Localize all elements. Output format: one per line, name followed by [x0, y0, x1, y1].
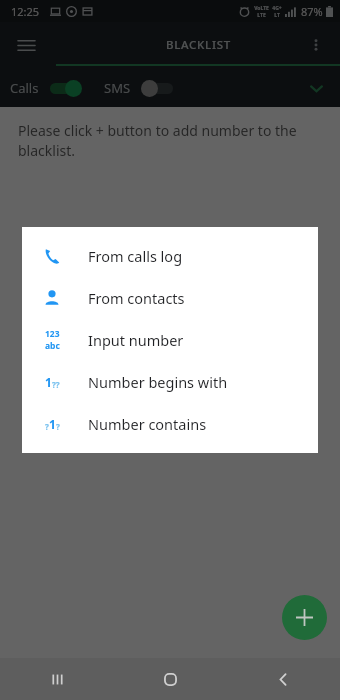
button[interactable]: More options: [298, 27, 334, 63]
button[interactable]: 123: [22, 319, 318, 361]
button[interactable]: Add number: [282, 595, 327, 640]
staticText: 4G+: [272, 5, 282, 12]
staticText: 1: [45, 374, 52, 390]
staticText: Please click + button to add number to t…: [18, 121, 310, 160]
staticText: ?: [56, 421, 60, 432]
button[interactable]: Back: [227, 658, 340, 700]
staticText: Input number: [88, 330, 184, 350]
staticText: 87%: [301, 4, 323, 19]
button[interactable]: ?: [22, 403, 318, 445]
staticText: 123: [45, 328, 60, 340]
button[interactable]: SMS: [104, 79, 174, 97]
staticText: From calls log: [88, 246, 183, 266]
staticText: abc: [45, 340, 60, 352]
staticText: 1: [49, 416, 56, 432]
button[interactable]: BLACKLIST: [56, 22, 340, 68]
button[interactable]: Recents: [0, 658, 114, 700]
staticText: SMS: [104, 79, 131, 97]
button[interactable]: 1: [22, 361, 318, 403]
button[interactable]: From calls log: [22, 235, 318, 277]
staticText: ??: [52, 379, 60, 390]
staticText: ?: [45, 421, 49, 432]
staticText: LT: [274, 12, 280, 19]
staticText: Calls: [10, 79, 39, 97]
staticText: 12:25: [11, 4, 40, 19]
staticText: Number contains: [88, 414, 207, 434]
staticText: BLACKLIST: [166, 37, 231, 53]
staticText: From contacts: [88, 288, 185, 308]
staticText: Number begins with: [88, 372, 228, 392]
staticText: LTE: [257, 12, 266, 19]
button[interactable]: Menu: [8, 27, 44, 63]
button[interactable]: Home: [114, 658, 227, 700]
button[interactable]: Expand: [300, 72, 332, 104]
staticText: VoLTE: [254, 5, 269, 12]
button[interactable]: From contacts: [22, 277, 318, 319]
button[interactable]: Calls: [10, 79, 82, 97]
